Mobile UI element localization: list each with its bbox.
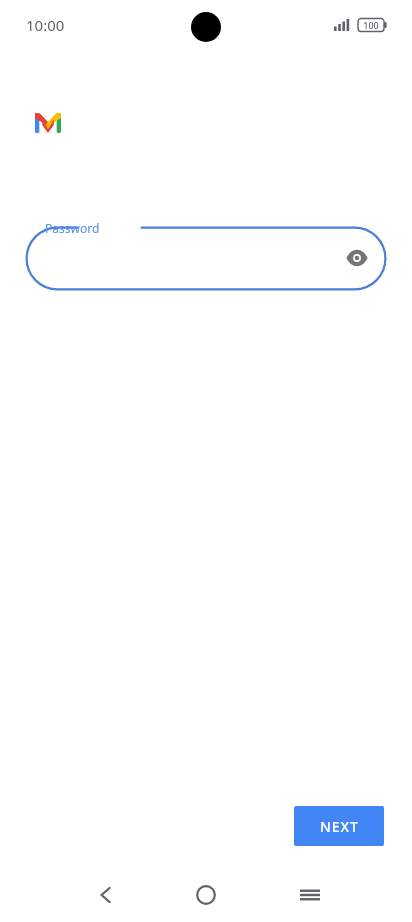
- button[interactable]: Recent apps: [287, 872, 333, 918]
- button[interactable]: NEXT: [294, 806, 384, 846]
- button[interactable]: Show password: [341, 242, 373, 274]
- staticText: 100: [363, 19, 379, 31]
- staticText: 10:00: [26, 15, 65, 35]
- staticText: NEXT: [320, 817, 359, 836]
- button[interactable]: Back: [83, 872, 129, 918]
- button[interactable]: [24, 225, 388, 292]
- button[interactable]: Home: [183, 872, 229, 918]
- staticText: Password: [45, 220, 100, 236]
